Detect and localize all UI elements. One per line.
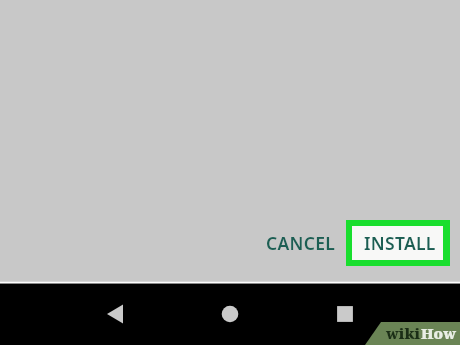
staticText: INSTALL bbox=[364, 231, 436, 255]
button[interactable]: CANCEL bbox=[254, 226, 348, 259]
button[interactable]: INSTALL bbox=[352, 226, 443, 260]
button[interactable]: Home bbox=[212, 296, 248, 332]
staticText: wiki bbox=[386, 323, 421, 343]
staticText: CANCEL bbox=[266, 231, 336, 255]
button[interactable]: Recent apps bbox=[327, 296, 363, 332]
button[interactable]: Back bbox=[97, 296, 133, 332]
staticText: How bbox=[421, 323, 456, 343]
